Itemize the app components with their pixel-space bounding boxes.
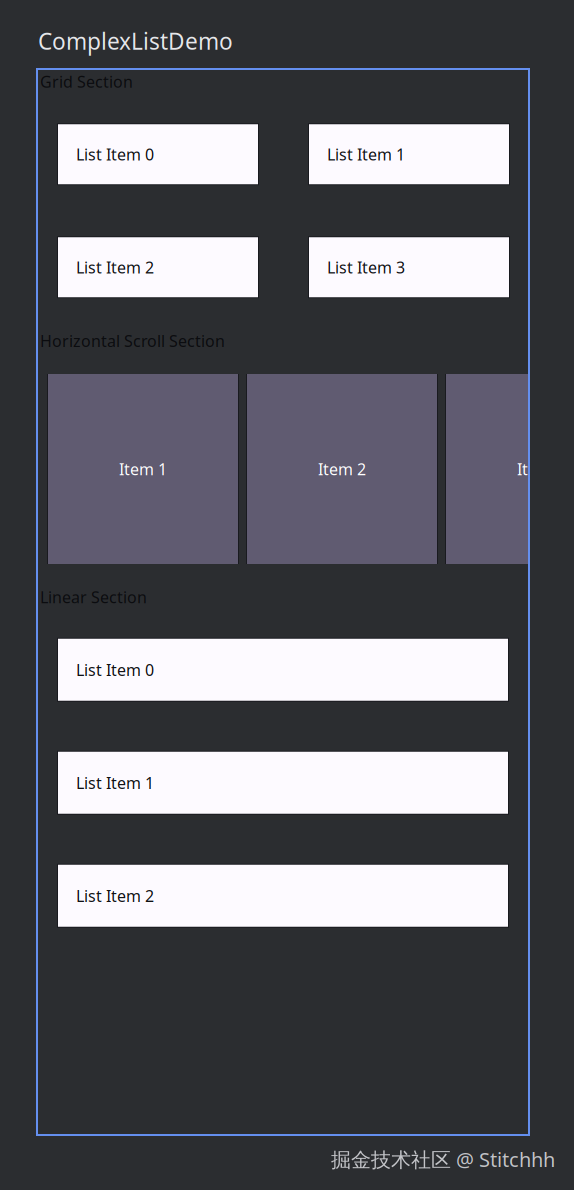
button[interactable]: List Item 1: [58, 752, 508, 814]
staticText: List Item 2: [76, 257, 154, 278]
button[interactable]: List Item 1: [309, 124, 509, 184]
button[interactable]: List Item 0: [58, 639, 508, 701]
staticText: List Item 1: [76, 772, 154, 793]
staticText: List Item 0: [76, 144, 154, 165]
button[interactable]: Item 1: [48, 374, 238, 564]
staticText: Item 3: [517, 458, 565, 480]
button[interactable]: Item 3: [446, 374, 574, 564]
staticText: Horizontal Scroll Section: [40, 330, 225, 351]
staticText: List Item 0: [76, 659, 154, 680]
button[interactable]: List Item 2: [58, 237, 258, 297]
staticText: Grid Section: [40, 71, 133, 92]
button[interactable]: Item 2: [247, 374, 437, 564]
button[interactable]: List Item 0: [58, 124, 258, 184]
staticText: Item 2: [318, 458, 366, 480]
staticText: ComplexListDemo: [38, 26, 233, 56]
staticText: List Item 1: [327, 144, 405, 165]
staticText: List Item 2: [76, 885, 154, 906]
staticText: Linear Section: [40, 586, 147, 608]
staticText: 掘金技术社区 @ Stitchhh: [331, 1146, 555, 1173]
staticText: List Item 3: [327, 257, 405, 278]
staticText: Item 1: [119, 458, 167, 480]
button[interactable]: List Item 3: [309, 237, 509, 297]
button[interactable]: List Item 2: [58, 865, 508, 927]
